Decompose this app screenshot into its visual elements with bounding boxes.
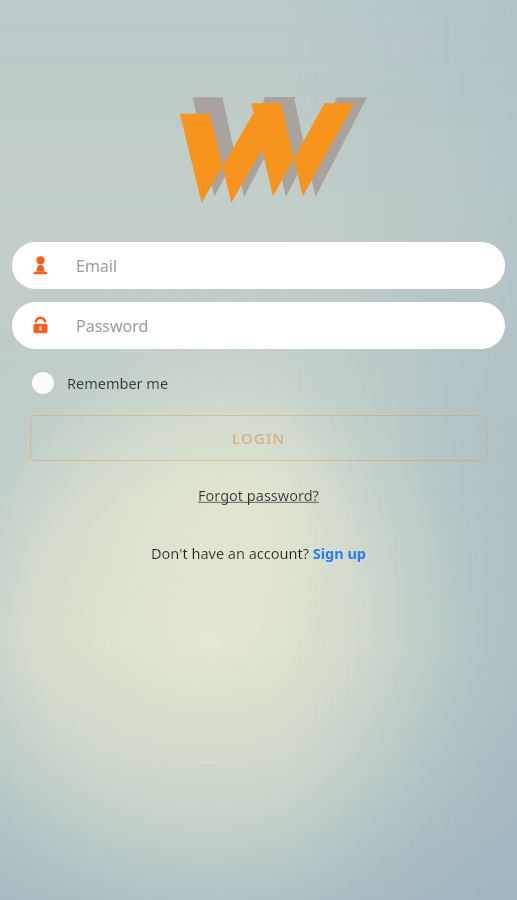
- other: Password: [30, 315, 51, 336]
- staticText: Remember me: [67, 373, 169, 393]
- staticText: Password: [76, 315, 149, 337]
- button[interactable]: Password: [12, 302, 505, 349]
- button[interactable]: LOGIN: [30, 415, 487, 461]
- other: Email: [30, 255, 51, 276]
- button[interactable]: Forgot password?: [190, 479, 327, 511]
- staticText: LOGIN: [232, 428, 286, 448]
- button[interactable]: Email: [12, 242, 505, 289]
- staticText: Forgot password?: [198, 485, 319, 505]
- button[interactable]: Don't have an account? Sign up: [143, 539, 375, 567]
- button[interactable]: Remember me: [12, 363, 505, 403]
- staticText: Email: [76, 255, 118, 277]
- staticText: Don't have an account? Sign up: [151, 543, 367, 563]
